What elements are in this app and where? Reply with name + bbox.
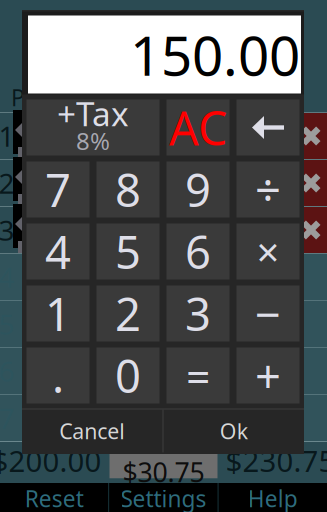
button[interactable]: 2: [96, 285, 159, 341]
button[interactable]: Ok: [163, 409, 304, 452]
staticText: 1: [45, 283, 71, 344]
staticText: +Tax: [57, 91, 129, 135]
staticText: 6: [185, 221, 211, 282]
button[interactable]: 5: [96, 223, 159, 279]
staticText: $230.75: [225, 441, 327, 480]
staticText: 150.00: [130, 18, 300, 91]
button[interactable]: .: [26, 347, 89, 403]
staticText: Cancel: [59, 417, 125, 445]
staticText: 4: [45, 221, 71, 282]
button[interactable]: 0: [96, 347, 159, 403]
button[interactable]: 1: [26, 285, 89, 341]
button[interactable]: +: [236, 347, 299, 403]
staticText: 8%: [76, 125, 110, 156]
button[interactable]: Backspace: [236, 99, 299, 155]
staticText: ×: [256, 225, 279, 278]
staticText: Settings: [120, 483, 206, 512]
button[interactable]: 6: [166, 223, 229, 279]
staticText: Help: [248, 483, 298, 512]
staticText: 5: [115, 221, 141, 282]
staticText: Ok: [220, 417, 248, 445]
staticText: 1: [0, 117, 14, 155]
staticText: 3: [0, 211, 14, 249]
button[interactable]: 3: [166, 285, 229, 341]
button[interactable]: −: [236, 285, 299, 341]
button[interactable]: 7: [26, 161, 89, 217]
staticText: AC: [169, 96, 227, 158]
button[interactable]: Delete item: [295, 113, 327, 159]
staticText: +: [255, 345, 281, 406]
button[interactable]: Delete item: [295, 160, 327, 206]
staticText: −: [255, 283, 281, 344]
staticText: $30.75: [122, 454, 204, 490]
staticText: .: [52, 345, 64, 406]
staticText: Price: [11, 82, 64, 112]
staticText: 9: [185, 159, 211, 220]
button[interactable]: AC: [166, 99, 229, 155]
staticText: 2: [115, 283, 141, 344]
button[interactable]: ×: [236, 223, 299, 279]
button[interactable]: =: [166, 347, 229, 403]
staticText: =: [186, 347, 210, 404]
button[interactable]: ÷: [236, 161, 299, 217]
button[interactable]: 9: [166, 161, 229, 217]
staticText: Reset: [25, 483, 84, 512]
button[interactable]: 8: [96, 161, 159, 217]
button[interactable]: +Tax: [26, 99, 159, 155]
button[interactable]: Cancel: [22, 409, 162, 452]
button[interactable]: Reset: [0, 483, 108, 512]
staticText: 7: [45, 159, 71, 220]
staticText: $200.00: [0, 441, 101, 480]
button[interactable]: 4: [26, 223, 89, 279]
button[interactable]: Delete item: [295, 207, 327, 253]
staticText: 8: [115, 159, 141, 220]
staticText: 3: [185, 283, 211, 344]
button[interactable]: Help: [219, 483, 327, 512]
staticText: ÷: [255, 159, 281, 220]
staticText: 0: [115, 345, 141, 406]
button[interactable]: Settings: [109, 483, 218, 512]
staticText: 2: [0, 164, 14, 202]
